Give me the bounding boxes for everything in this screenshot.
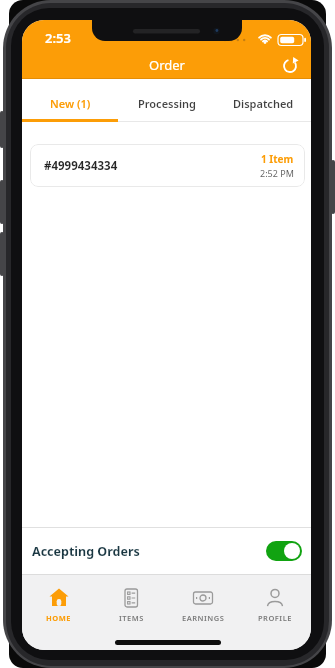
- staticText: 1 Item: [261, 152, 294, 166]
- button[interactable]: Dispatched: [215, 79, 311, 122]
- button[interactable]: ITEMS: [95, 575, 167, 650]
- staticText: #4999434334: [44, 158, 118, 174]
- button[interactable]: #4999434334: [30, 144, 305, 187]
- staticText: ITEMS: [119, 613, 144, 623]
- staticText: PROFILE: [258, 613, 292, 623]
- button[interactable]: Processing: [119, 79, 215, 122]
- staticText: 2:53: [45, 29, 71, 47]
- button[interactable]: [282, 57, 299, 74]
- staticText: 2:52 PM: [260, 167, 294, 179]
- button[interactable]: HOME: [22, 575, 95, 650]
- staticText: HOME: [46, 613, 71, 623]
- staticText: Order: [149, 56, 185, 74]
- staticText: EARNINGS: [182, 613, 225, 623]
- staticText: Dispatched: [233, 96, 294, 111]
- staticText: Accepting Orders: [32, 543, 140, 560]
- button[interactable]: EARNINGS: [167, 575, 239, 650]
- staticText: Processing: [138, 96, 196, 111]
- button[interactable]: New (1): [22, 79, 119, 122]
- staticText: New (1): [50, 96, 91, 111]
- button[interactable]: [266, 541, 302, 561]
- button[interactable]: PROFILE: [239, 575, 311, 650]
